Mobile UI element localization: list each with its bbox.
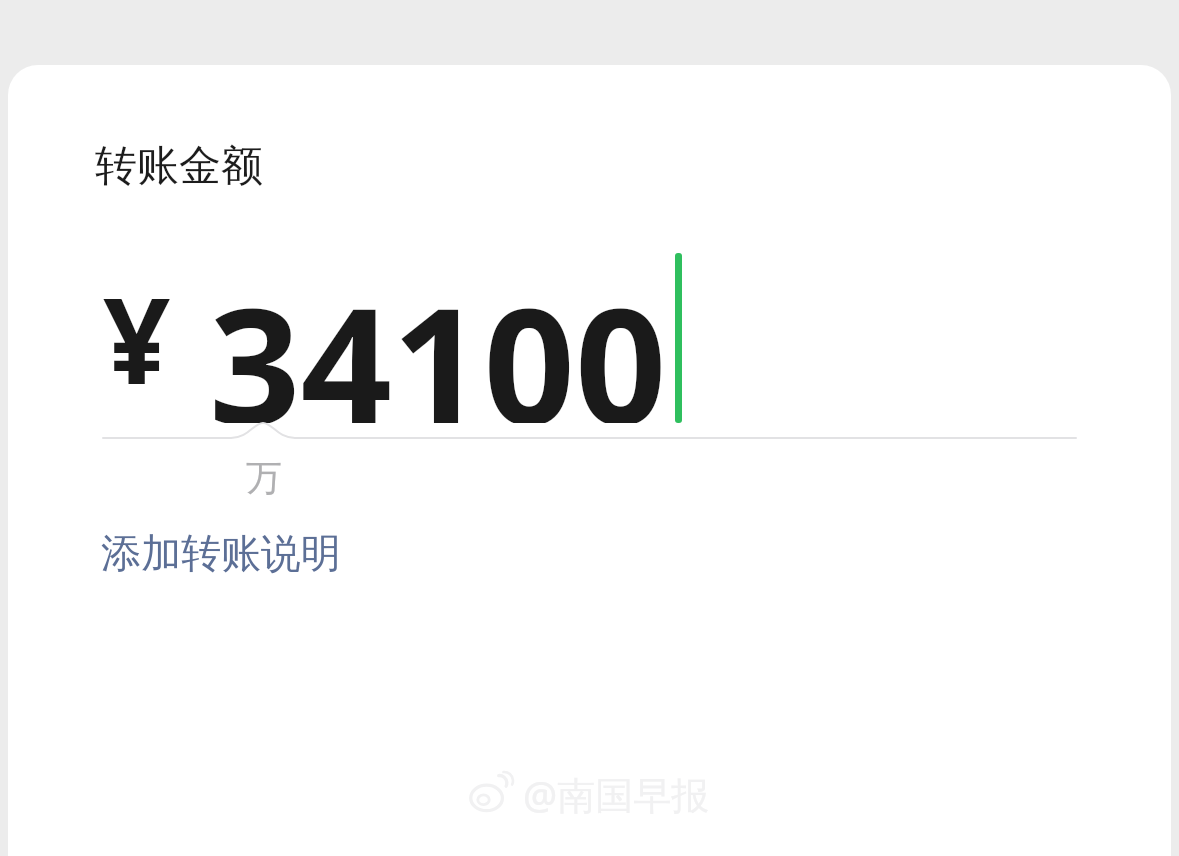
staticText: 转账金额 xyxy=(95,140,263,193)
staticText: 添加转账说明 xyxy=(101,528,341,578)
staticText: 34100 xyxy=(209,253,667,423)
staticText: 万 xyxy=(246,455,282,500)
staticText: @南国早报 xyxy=(523,768,710,820)
button[interactable]: 添加转账说明 xyxy=(95,522,347,584)
button[interactable]: ¥ xyxy=(8,253,1171,423)
staticText: ¥ xyxy=(103,258,171,419)
